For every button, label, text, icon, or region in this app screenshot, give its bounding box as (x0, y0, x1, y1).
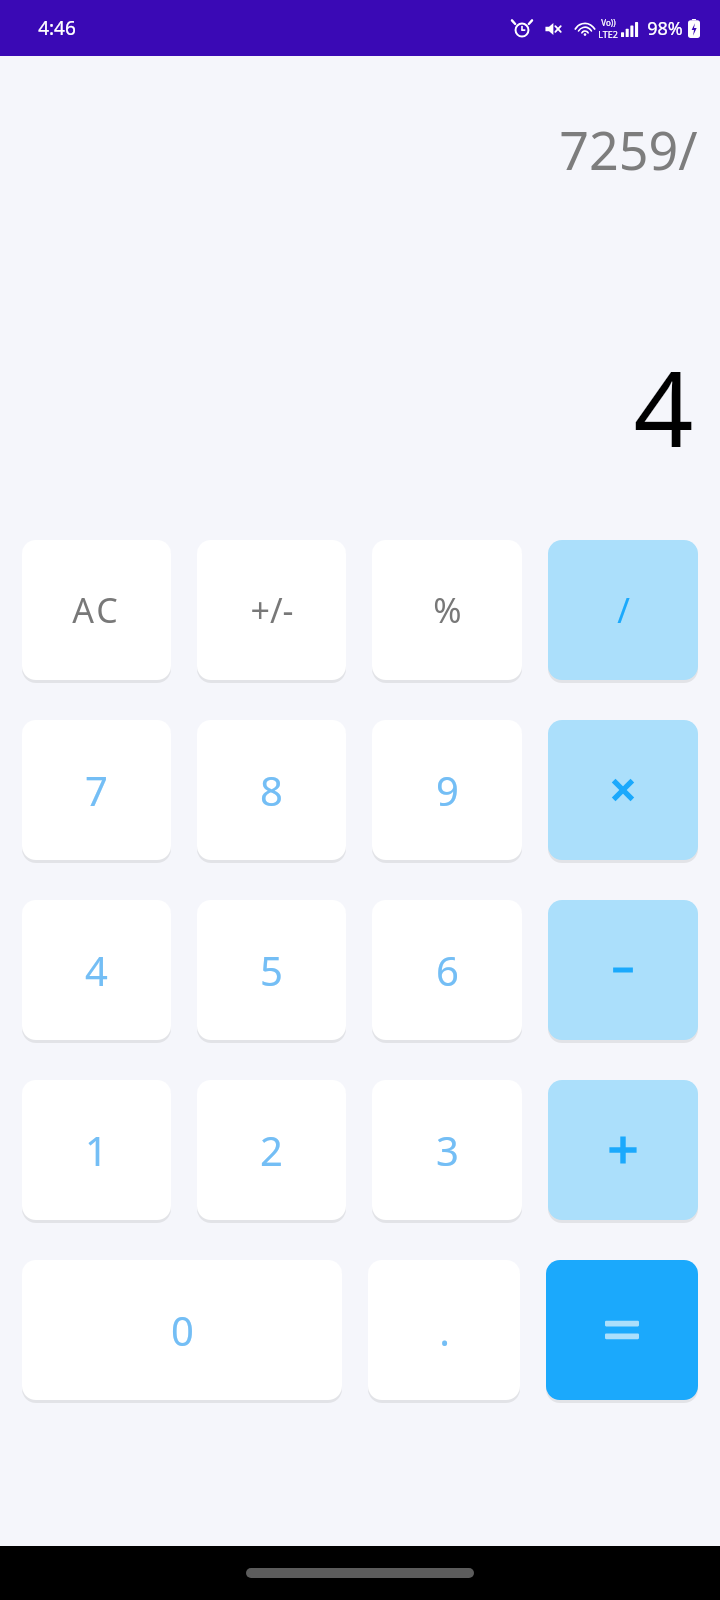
staticText: 9 (436, 763, 459, 817)
button[interactable]: 1 (22, 1080, 171, 1220)
button[interactable]: . (368, 1260, 520, 1400)
staticText: % (433, 587, 462, 633)
button[interactable]: 3 (372, 1080, 522, 1220)
staticText: 7259/ (559, 114, 698, 185)
button[interactable]: 7 (22, 720, 171, 860)
button[interactable]: Add (548, 1080, 698, 1220)
button[interactable]: 9 (372, 720, 522, 860)
staticText: 3 (436, 1123, 459, 1177)
staticText: +/- (250, 587, 294, 633)
button[interactable]: AC (22, 540, 171, 680)
button[interactable]: Multiply (548, 720, 698, 860)
button[interactable]: 2 (197, 1080, 346, 1220)
staticText: AC (72, 587, 121, 633)
staticText: 8 (260, 763, 283, 817)
button[interactable]: / (548, 540, 698, 680)
staticText: 5 (260, 943, 283, 997)
staticText: . (439, 1303, 450, 1357)
staticText: 1 (85, 1123, 108, 1177)
button[interactable]: 6 (372, 900, 522, 1040)
staticText: 2 (260, 1123, 283, 1177)
staticText: 4:46 (38, 15, 76, 41)
button[interactable]: 0 (22, 1260, 342, 1400)
button[interactable]: +/- (197, 540, 346, 680)
staticText: 98% (647, 16, 683, 41)
staticText: Vo)) (601, 17, 616, 28)
staticText: / (617, 587, 630, 633)
button[interactable]: 8 (197, 720, 346, 860)
staticText: 6 (436, 943, 459, 997)
button[interactable]: 4 (22, 900, 171, 1040)
button[interactable]: Equals (546, 1260, 698, 1400)
button[interactable]: Subtract (548, 900, 698, 1040)
staticText: 7 (85, 763, 108, 817)
staticText: LTE2 (598, 28, 618, 40)
button[interactable]: % (372, 540, 522, 680)
button[interactable]: 5 (197, 900, 346, 1040)
staticText: 4 (85, 943, 108, 997)
staticText: 0 (171, 1303, 194, 1357)
staticText: 4 (633, 335, 694, 478)
